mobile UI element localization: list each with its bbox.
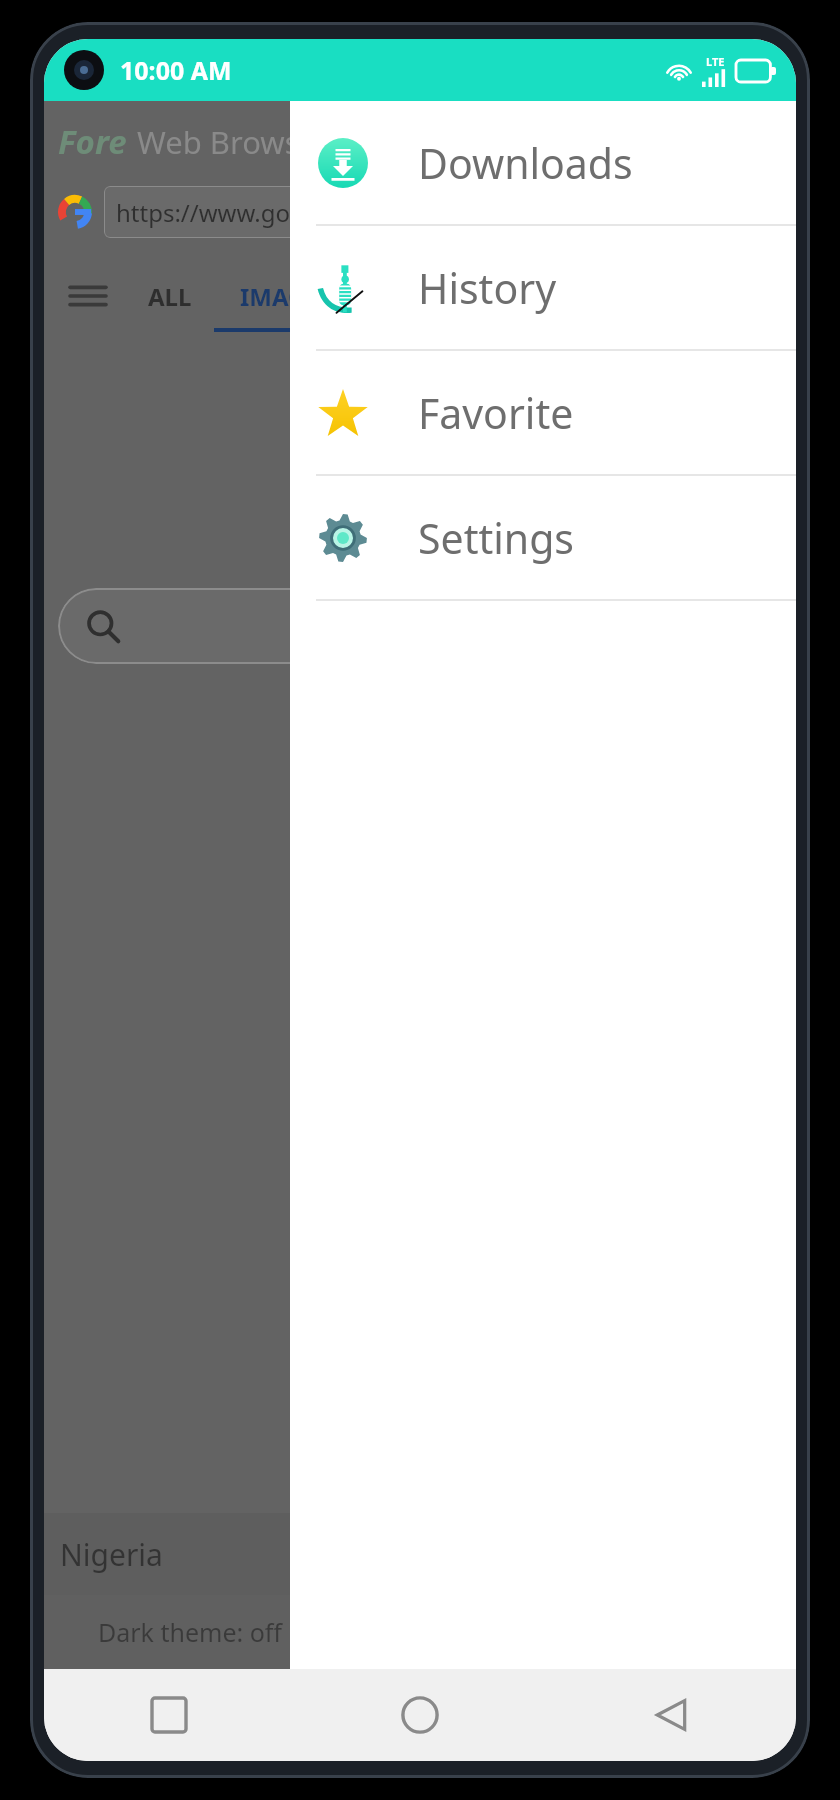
button[interactable]: Settings xyxy=(290,476,796,599)
button[interactable]: Back xyxy=(545,1669,796,1761)
staticText: Downloads xyxy=(418,135,633,191)
staticText: History xyxy=(418,260,557,316)
staticText: 10:00 AM xyxy=(120,53,232,87)
staticText: Settings xyxy=(418,510,575,566)
staticText: IMAGES xyxy=(240,280,333,313)
staticText: LTE xyxy=(706,54,725,69)
staticText: Dark theme: off xyxy=(98,1615,283,1649)
staticText: https://www.google.com xyxy=(116,196,394,229)
staticText: Web Browser xyxy=(137,121,330,163)
button[interactable]: Downloads xyxy=(290,101,796,224)
staticText: Fore xyxy=(58,119,127,164)
staticText: Favorite xyxy=(418,385,574,441)
button[interactable]: Recent apps xyxy=(44,1669,294,1761)
button[interactable]: Home xyxy=(294,1669,545,1761)
button[interactable]: Favorite xyxy=(290,351,796,474)
button[interactable]: History xyxy=(290,226,796,349)
staticText: ALL xyxy=(148,280,192,313)
staticText: Nigeria xyxy=(60,1534,163,1575)
